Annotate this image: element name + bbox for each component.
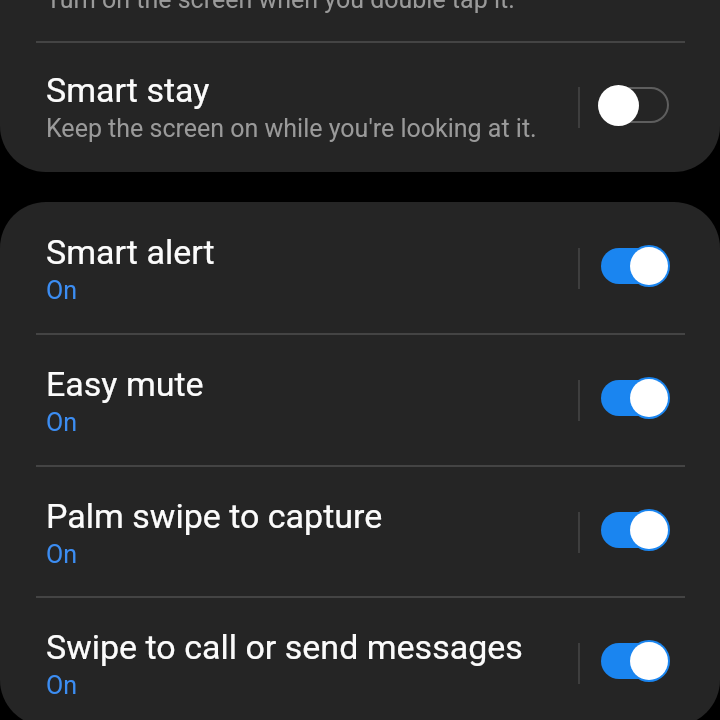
button[interactable]: Swipe to call or send messages [0, 597, 720, 720]
button[interactable]: Easy mute [0, 334, 720, 466]
staticText: Swipe to call or send messages [46, 627, 523, 667]
staticText: Turn on the screen when you double tap i… [46, 0, 515, 14]
staticText: On [46, 408, 78, 437]
button[interactable]: Palm swipe to capture [0, 466, 720, 598]
button[interactable]: Smart stay [0, 41, 720, 172]
staticText: On [46, 540, 78, 569]
button[interactable]: Smart alert, on [577, 226, 697, 306]
button[interactable]: Smart stay, off [577, 65, 697, 145]
staticText: Easy mute [46, 364, 204, 404]
button[interactable]: Swipe to call or send messages, on [577, 621, 697, 701]
button[interactable]: Easy mute, on [577, 358, 697, 438]
staticText: Palm swipe to capture [46, 496, 383, 536]
staticText: Smart stay [46, 70, 210, 110]
button[interactable]: Palm swipe to capture, on [577, 490, 697, 570]
staticText: On [46, 276, 78, 305]
staticText: On [46, 671, 78, 700]
staticText: Keep the screen on while you're looking … [46, 114, 537, 143]
button[interactable]: Smart alert [0, 202, 720, 334]
staticText: Smart alert [46, 232, 215, 272]
